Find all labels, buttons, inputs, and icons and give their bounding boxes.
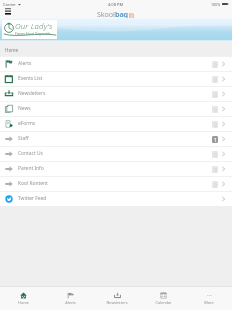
staticText: 0 [214, 167, 217, 173]
button[interactable]: Staff [0, 131, 232, 146]
button[interactable]: Menu [5, 8, 11, 15]
staticText: Events List [18, 75, 43, 82]
staticText: 0 [214, 152, 217, 158]
staticText: 100% [211, 2, 221, 7]
staticText: Alerts [65, 300, 76, 305]
button[interactable]: Newsletters [0, 86, 232, 101]
staticText: Our Lady's [15, 21, 53, 32]
staticText: 4:08 PM [108, 2, 124, 7]
staticText: 0 [214, 62, 217, 68]
staticText: Contact Us [18, 150, 43, 157]
button[interactable]: Alerts [47, 287, 94, 310]
staticText: Newsletters [18, 90, 46, 97]
staticText: Parent Info [18, 165, 44, 172]
button[interactable]: Contact Us [0, 146, 232, 161]
staticText: Home [5, 47, 19, 53]
staticText: Alerts [18, 60, 32, 67]
button[interactable]: Newsletters [94, 287, 140, 310]
staticText: Kool Kontent [18, 180, 48, 187]
staticText: 0 [214, 107, 217, 113]
staticText: Primary School Chippendale [15, 32, 51, 36]
button[interactable]: Alerts [0, 56, 232, 71]
staticText: 1 [214, 137, 217, 143]
staticText: Skool [97, 9, 115, 19]
button[interactable]: Home [0, 287, 47, 310]
staticText: Carrier [3, 2, 17, 7]
staticText: News [18, 105, 31, 112]
staticText: Newsletters [106, 300, 128, 305]
staticText: More [204, 300, 214, 305]
button[interactable]: Twitter Feed [0, 191, 232, 206]
staticText: bag [115, 9, 128, 19]
button[interactable]: More [186, 287, 232, 310]
button[interactable]: News [0, 101, 232, 116]
staticText: Home [18, 300, 29, 305]
staticText: eForms [18, 120, 36, 127]
staticText: 0 [214, 77, 217, 83]
button[interactable]: Kool Kontent [0, 176, 232, 191]
button[interactable]: Parent Info [0, 161, 232, 176]
staticText: 0 [214, 122, 217, 128]
button[interactable]: eForms [0, 116, 232, 131]
staticText: 0 [214, 182, 217, 188]
button[interactable]: Events List [0, 71, 232, 86]
staticText: Staff [18, 135, 29, 142]
staticText: Calendar [155, 300, 172, 305]
staticText: Twitter Feed [18, 195, 47, 202]
staticText: 0 [214, 92, 217, 98]
button[interactable]: Calendar [140, 287, 186, 310]
